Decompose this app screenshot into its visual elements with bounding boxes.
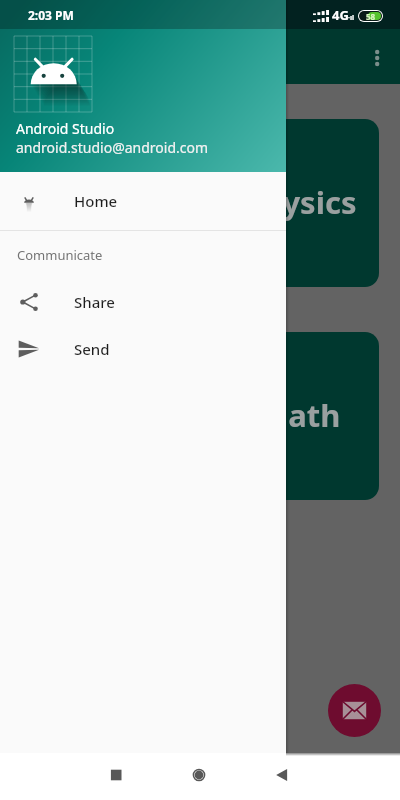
button[interactable]: Physics	[227, 119, 379, 287]
button[interactable]: Home	[0, 172, 286, 230]
staticText: Share	[74, 292, 115, 312]
button[interactable]: Send	[0, 325, 286, 372]
staticText: Communicate	[17, 246, 103, 264]
button[interactable]: Math	[227, 332, 379, 500]
button[interactable]: Share	[0, 279, 286, 325]
staticText: Home	[74, 191, 118, 211]
staticText: 4G	[332, 6, 349, 24]
button[interactable]: More options	[355, 36, 399, 80]
staticText: ·ıl	[348, 13, 355, 23]
staticText: Physics	[243, 181, 357, 223]
button[interactable]: Compose message	[328, 684, 381, 737]
staticText: Send	[74, 339, 110, 359]
staticText: Android Studio	[16, 119, 115, 138]
staticText: 2:03 PM	[28, 7, 74, 23]
staticText: android.studio@android.com	[16, 138, 209, 157]
staticText: 58	[366, 11, 376, 21]
staticText: Math	[259, 394, 341, 436]
